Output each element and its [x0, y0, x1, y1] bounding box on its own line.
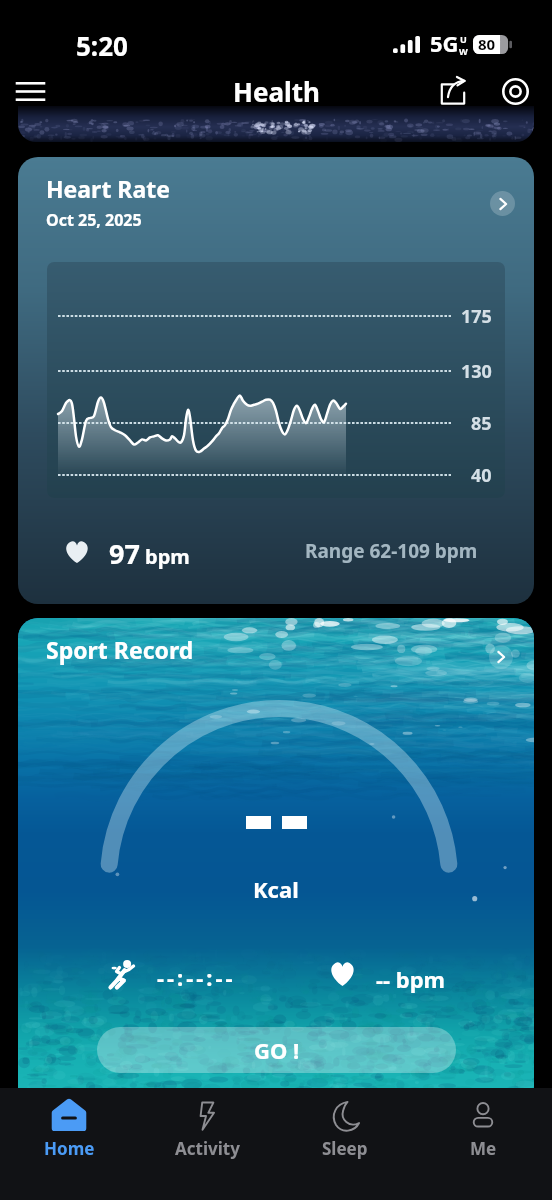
button[interactable]: Menu: [8, 69, 52, 113]
button[interactable]: Sport Record: [18, 618, 534, 1088]
staticText: Me: [470, 1137, 497, 1160]
staticText: Heart Rate: [46, 173, 170, 204]
staticText: Range 62-109 bpm: [305, 538, 478, 564]
staticText: Activity: [175, 1137, 240, 1160]
staticText: Kcal: [253, 874, 299, 904]
staticText: 97: [109, 535, 140, 572]
staticText: 5:20: [76, 28, 128, 63]
button[interactable]: [18, 106, 534, 142]
button[interactable]: Open Heart Rate details: [490, 191, 515, 216]
staticText: 85: [471, 411, 492, 436]
staticText: 175: [461, 304, 492, 329]
button[interactable]: GO !: [97, 1027, 456, 1073]
staticText: -- bpm: [376, 964, 446, 994]
button[interactable]: Activity: [138, 1088, 276, 1200]
button[interactable]: Heart Rate: [18, 157, 534, 604]
staticText: Sport Record: [46, 634, 194, 665]
staticText: Sleep: [322, 1137, 368, 1160]
staticText: bpm: [145, 543, 190, 570]
staticText: U: [460, 33, 467, 45]
staticText: 80: [478, 34, 496, 54]
staticText: Oct 25, 2025: [46, 209, 142, 231]
button[interactable]: Me: [414, 1088, 552, 1200]
staticText: W: [459, 45, 468, 57]
button[interactable]: Sleep: [276, 1088, 414, 1200]
staticText: GO !: [254, 1035, 300, 1065]
button[interactable]: Share: [429, 67, 477, 115]
button[interactable]: Scan: [491, 67, 539, 115]
staticText: Health: [233, 74, 320, 109]
staticText: Home: [44, 1137, 95, 1160]
staticText: --:--:--: [157, 962, 236, 992]
staticText: 130: [461, 359, 492, 384]
button[interactable]: Home: [0, 1088, 138, 1200]
button[interactable]: Open Sport Record: [489, 645, 513, 669]
staticText: 40: [471, 463, 492, 488]
staticText: 5G: [430, 28, 459, 58]
